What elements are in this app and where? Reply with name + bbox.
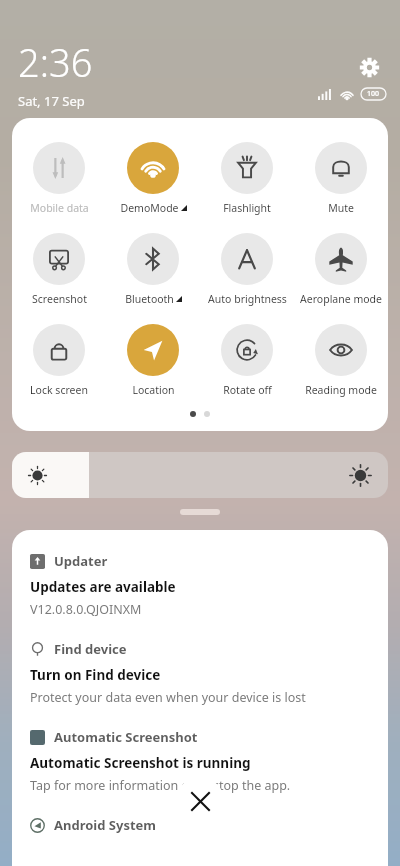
button[interactable]: DemoMode [106, 140, 200, 217]
button[interactable]: Reading mode [294, 322, 388, 399]
staticText: Lock screen [30, 383, 88, 397]
button[interactable]: Auto brightness [200, 231, 294, 308]
button[interactable]: Flashlight [200, 140, 294, 217]
button[interactable]: Close [176, 777, 224, 825]
staticText: Sat, 17 Sep [18, 92, 85, 110]
staticText: Screenshot [32, 292, 87, 306]
button[interactable]: Screenshot [12, 231, 106, 308]
staticText: Location [132, 383, 175, 397]
button[interactable]: Mute [294, 140, 388, 217]
staticText: V12.0.8.0.QJOINXM [30, 601, 142, 618]
staticText: DemoMode [120, 201, 179, 215]
staticText: 2:36 [18, 36, 93, 88]
button[interactable]: Mobile data [12, 140, 106, 217]
staticText: Protect your data even when your device … [30, 689, 306, 706]
staticText: Updates are available [30, 578, 176, 596]
staticText: Turn on Find device [30, 666, 161, 684]
button[interactable]: Location [106, 322, 200, 399]
staticText: Bluetooth [125, 292, 174, 306]
staticText: Aeroplane mode [300, 292, 382, 306]
button[interactable]: Rotate off [200, 322, 294, 399]
staticText: Mobile data [30, 201, 89, 215]
button[interactable]: Automatic Screenshot [30, 728, 370, 794]
staticText: Find device [54, 640, 127, 658]
staticText: Reading mode [305, 383, 377, 397]
staticText: Auto brightness [208, 292, 287, 306]
staticText: Android System [54, 816, 157, 834]
button[interactable]: Brightness [12, 452, 388, 498]
staticText: Tap for more information or to stop the … [30, 777, 291, 794]
button[interactable]: Aeroplane mode [294, 231, 388, 308]
staticText: Flashlight [223, 201, 271, 215]
staticText: Automatic Screenshot [54, 728, 198, 746]
staticText: Mute [328, 201, 354, 215]
staticText: Updater [54, 552, 108, 570]
button[interactable]: Android System [30, 816, 370, 834]
button[interactable]: Bluetooth [106, 231, 200, 308]
button[interactable]: Find device [30, 640, 370, 706]
staticText: Automatic Screenshot is running [30, 754, 251, 772]
button[interactable]: Updater [30, 552, 370, 618]
staticText: 100 [367, 89, 380, 99]
button[interactable]: Lock screen [12, 322, 106, 399]
button[interactable]: Settings [352, 50, 386, 84]
staticText: Rotate off [223, 383, 272, 397]
